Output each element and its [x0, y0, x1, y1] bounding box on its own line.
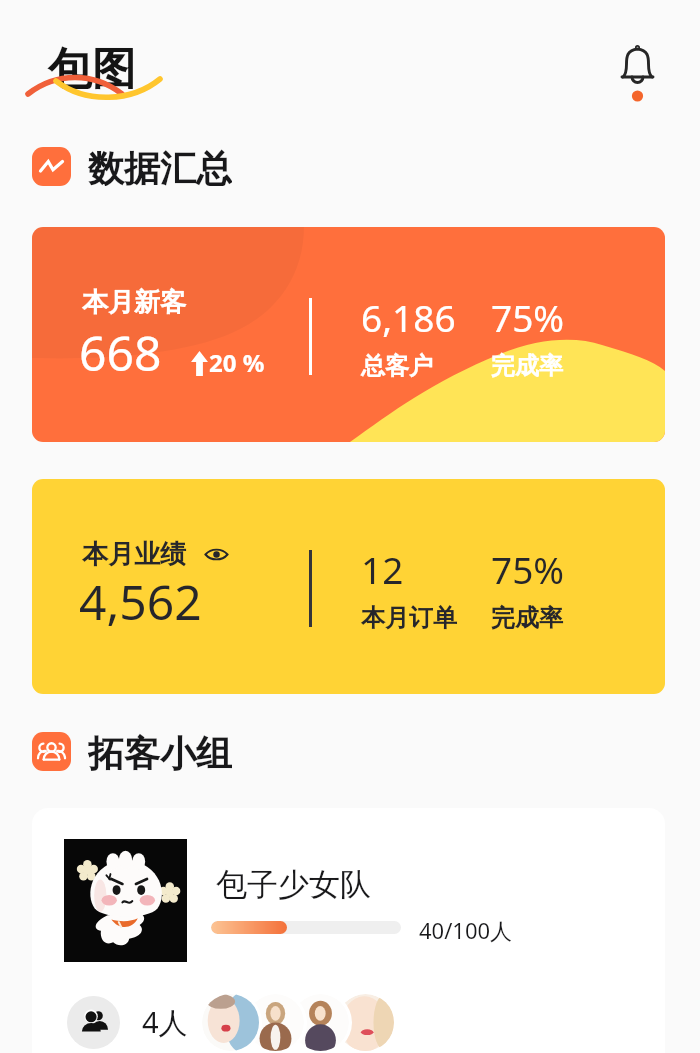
staticText: 40/100人	[419, 915, 513, 945]
staticText: 12	[361, 544, 404, 594]
staticText: 完成率	[491, 351, 563, 381]
staticText: 完成率	[491, 603, 563, 633]
staticText: 6,186	[361, 292, 456, 342]
staticText: 4人	[142, 1002, 188, 1042]
button[interactable]: 拓客小组	[32, 731, 232, 771]
button[interactable]: 本月业绩	[32, 479, 665, 694]
staticText: 拓客小组	[88, 731, 232, 771]
staticText: 本月订单	[361, 603, 457, 633]
staticText: 75%	[491, 292, 565, 342]
button[interactable]: 本月新客	[32, 227, 665, 442]
button[interactable]: Notifications	[598, 38, 676, 114]
staticText: 20 %	[209, 346, 265, 379]
button[interactable]: 数据汇总	[32, 146, 232, 186]
staticText: 包图	[48, 42, 136, 97]
staticText: 4,562	[79, 569, 202, 634]
button[interactable]: 包子少女队	[32, 808, 665, 1053]
staticText: 包子少女队	[216, 865, 371, 904]
staticText: 数据汇总	[88, 146, 232, 186]
staticText: 75%	[491, 544, 565, 594]
staticText: 本月业绩	[82, 538, 186, 571]
staticText: 总客户	[361, 351, 433, 381]
staticText: 668	[79, 320, 162, 385]
staticText: 本月新客	[82, 286, 186, 319]
